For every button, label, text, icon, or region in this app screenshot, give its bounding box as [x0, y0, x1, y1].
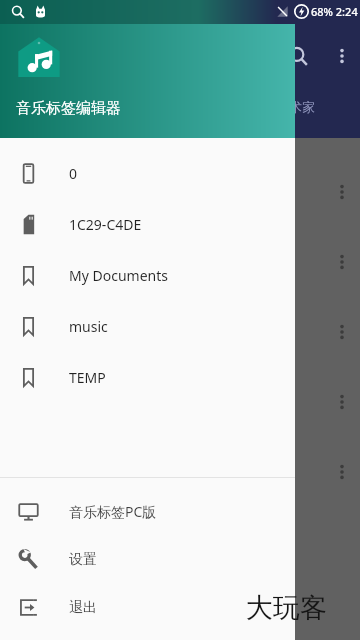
button[interactable]: Item options — [322, 172, 360, 212]
button[interactable]: Item options — [322, 312, 360, 352]
button[interactable]: music — [0, 301, 295, 352]
staticText: 艺术家 — [276, 99, 315, 115]
button[interactable]: Item options — [322, 452, 360, 492]
staticText: 音乐标签编辑器 — [16, 99, 121, 118]
staticText: TEMP — [69, 368, 106, 387]
button[interactable]: 音乐标签PC版 — [0, 495, 295, 528]
staticText: My Documents — [69, 266, 168, 285]
button[interactable]: 设置 — [0, 543, 295, 576]
staticText: 退出 — [69, 599, 97, 617]
button[interactable]: More options — [322, 36, 360, 76]
staticText: 大玩客 — [246, 591, 327, 625]
button[interactable]: 0 — [0, 148, 295, 199]
button[interactable]: TEMP — [0, 352, 295, 403]
button[interactable]: My Documents — [0, 250, 295, 301]
button[interactable]: Item options — [322, 242, 360, 282]
button[interactable]: Item options — [322, 382, 360, 422]
staticText: 音乐标签PC版 — [69, 502, 157, 521]
button[interactable]: 1C29-C4DE — [0, 199, 295, 250]
staticText: music — [69, 317, 108, 336]
staticText: 68% 2:24 — [311, 4, 358, 19]
button[interactable]: Search — [278, 36, 318, 76]
staticText: 设置 — [69, 551, 97, 569]
button[interactable]: 退出 — [0, 591, 295, 624]
staticText: 1C29-C4DE — [69, 215, 142, 234]
staticText: 0 — [69, 164, 78, 183]
